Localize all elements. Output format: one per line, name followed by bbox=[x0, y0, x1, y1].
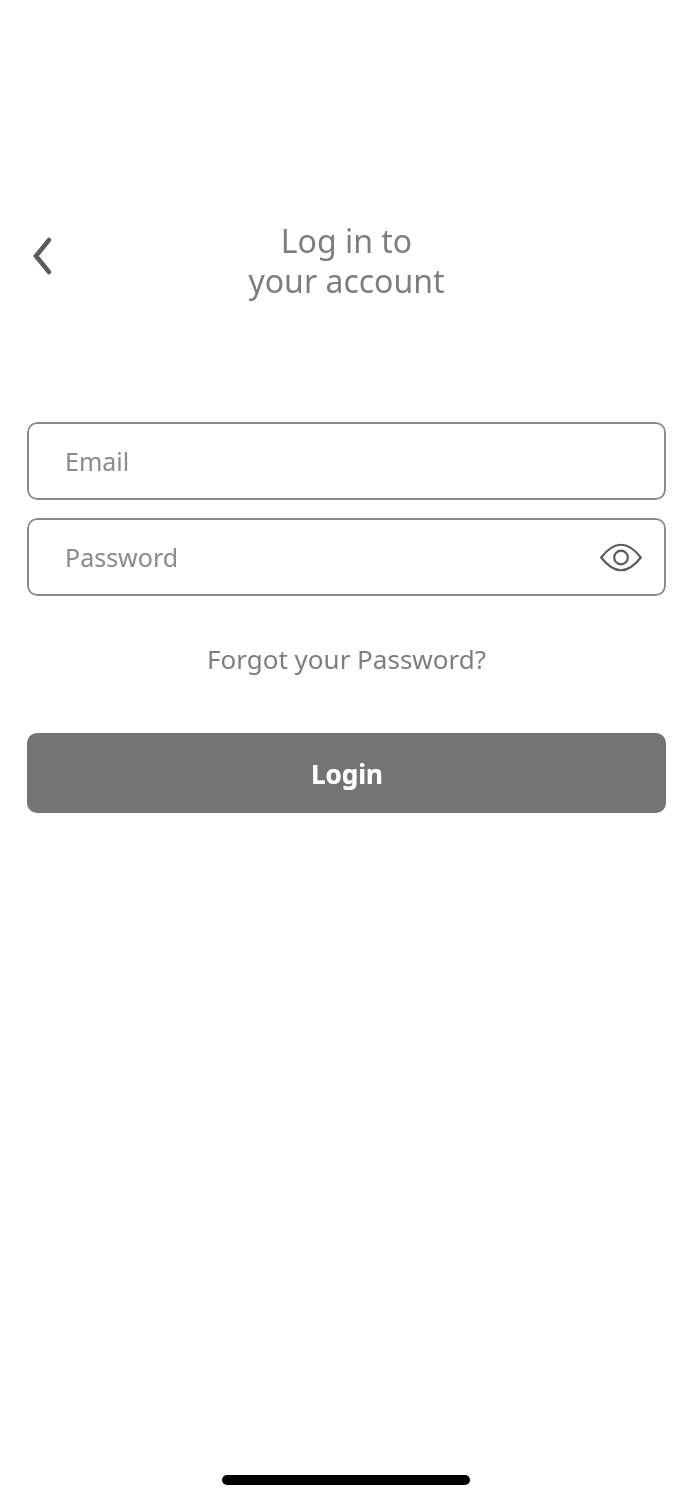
button[interactable]: Login bbox=[27, 733, 666, 813]
button[interactable] bbox=[591, 527, 651, 587]
button[interactable] bbox=[18, 232, 66, 280]
button[interactable]: Email bbox=[27, 422, 666, 500]
staticText: Forgot your Password? bbox=[207, 641, 487, 676]
staticText: Login bbox=[311, 756, 383, 791]
staticText: Log in to your account bbox=[248, 219, 445, 303]
button[interactable]: Password bbox=[27, 518, 666, 596]
button[interactable]: Forgot your Password? bbox=[207, 641, 487, 676]
staticText: Password bbox=[65, 540, 179, 574]
staticText: Email bbox=[65, 444, 130, 478]
